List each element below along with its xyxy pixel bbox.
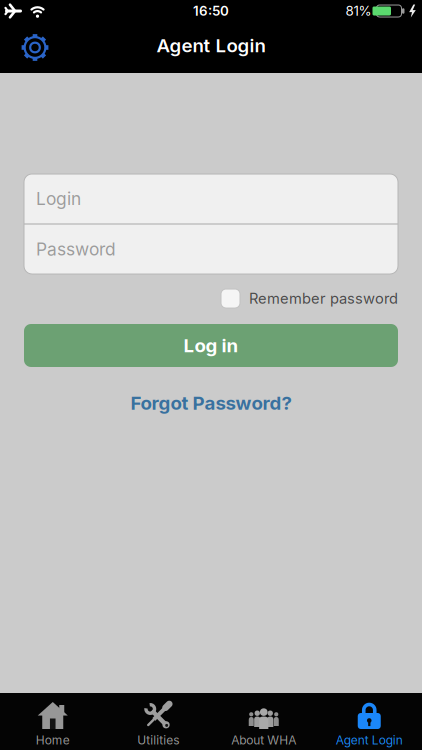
staticText: 81%: [345, 3, 371, 19]
staticText: Agent Login: [336, 733, 403, 747]
staticText: Home: [36, 733, 70, 747]
staticText: 16:50: [193, 3, 229, 19]
button[interactable]: Password: [24, 224, 398, 274]
button[interactable]: Utilities: [105, 693, 211, 750]
button[interactable]: Settings: [0, 32, 62, 62]
staticText: Login: [36, 188, 81, 209]
staticText: Utilities: [137, 733, 179, 747]
button[interactable]: Log in: [24, 324, 398, 367]
button[interactable]: Forgot Password?: [130, 392, 291, 414]
button[interactable]: Remember password: [221, 289, 398, 308]
staticText: Remember password: [249, 290, 398, 307]
button[interactable]: Agent Login: [316, 693, 422, 750]
staticText: Log in: [183, 334, 238, 356]
staticText: About WHA: [231, 733, 296, 747]
button[interactable]: About WHA: [211, 693, 316, 750]
staticText: Forgot Password?: [130, 392, 291, 414]
staticText: Agent Login: [156, 34, 265, 56]
button[interactable]: Home: [0, 693, 105, 750]
staticText: Password: [36, 239, 116, 259]
button[interactable]: Login: [24, 174, 398, 223]
